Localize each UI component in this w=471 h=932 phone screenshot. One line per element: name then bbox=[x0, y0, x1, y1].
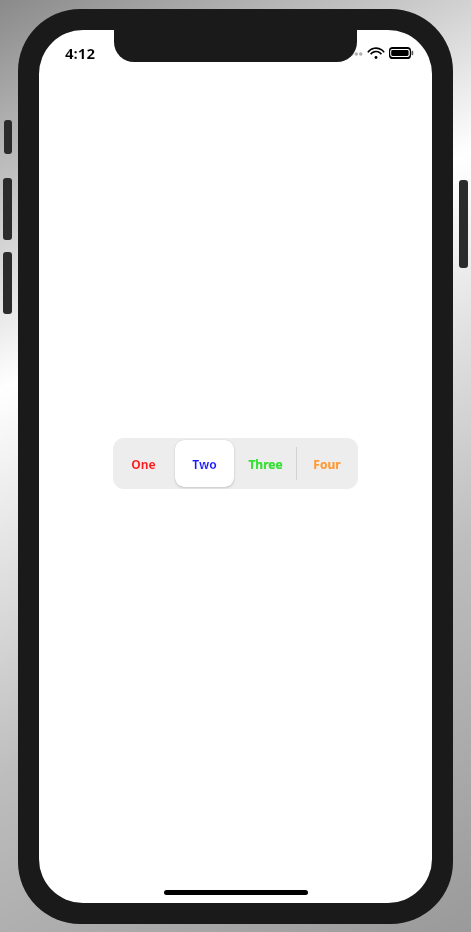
button[interactable]: Three bbox=[235, 438, 296, 489]
other: Wi-Fi bbox=[368, 47, 384, 59]
staticText: One bbox=[131, 456, 156, 472]
staticText: 4:12 bbox=[65, 43, 95, 63]
staticText: Three bbox=[248, 456, 283, 472]
staticText: Four bbox=[313, 456, 341, 472]
button[interactable]: One bbox=[113, 438, 174, 489]
other: Cellular signal bbox=[345, 49, 363, 57]
button[interactable]: Two bbox=[174, 438, 235, 489]
staticText: Two bbox=[192, 456, 217, 472]
button[interactable]: Four bbox=[296, 438, 357, 489]
other: Battery bbox=[389, 47, 414, 59]
